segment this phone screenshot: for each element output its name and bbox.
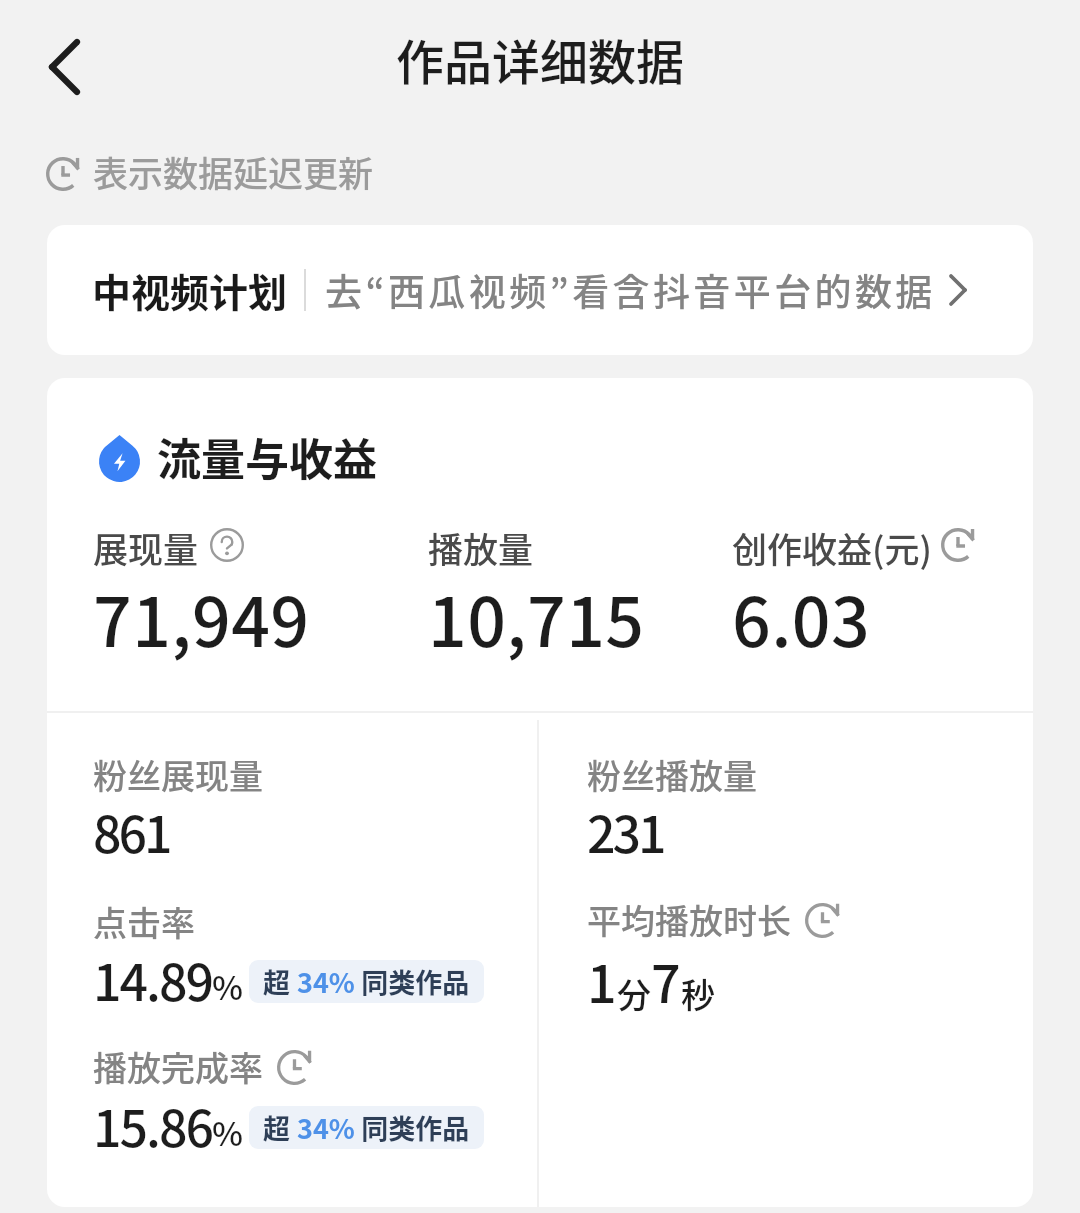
staticText: 粉丝展现量: [93, 750, 263, 799]
staticText: 播放完成率: [93, 1042, 263, 1091]
staticText: 71,949: [93, 568, 310, 666]
staticText: 中视频计划: [92, 262, 288, 318]
staticText: 同类作品: [355, 962, 470, 1001]
staticText: 7: [651, 943, 681, 1018]
staticText: 1: [587, 943, 617, 1018]
staticText: 去“西瓜视频”看含抖音平台的数据: [325, 263, 936, 317]
staticText: 15.86: [93, 1089, 212, 1161]
staticText: 平均播放时长: [587, 895, 791, 944]
staticText: 秒: [681, 969, 715, 1018]
staticText: 流量与收益: [157, 425, 377, 489]
staticText: 作品详细数据: [396, 24, 685, 94]
staticText: %: [212, 962, 243, 1010]
staticText: 表示数据延迟更新: [93, 146, 374, 197]
staticText: 同类作品: [355, 1108, 470, 1147]
staticText: %: [212, 1108, 243, 1156]
staticText: 34%: [297, 1108, 355, 1147]
button[interactable]: What is 展现量: [210, 528, 244, 562]
button[interactable]: Back: [29, 32, 99, 102]
staticText: 点击率: [93, 897, 195, 946]
staticText: 6.03: [732, 568, 871, 666]
staticText: 34%: [297, 962, 355, 1001]
staticText: 播放量: [428, 522, 534, 573]
staticText: 超: [263, 962, 297, 1001]
staticText: 创作收益(元): [732, 522, 932, 573]
staticText: 超: [263, 1108, 297, 1147]
staticText: 粉丝播放量: [587, 750, 757, 799]
staticText: 231: [587, 795, 664, 867]
staticText: 展现量: [93, 522, 199, 573]
staticText: 分: [617, 969, 651, 1018]
staticText: 861: [93, 795, 170, 867]
staticText: 10,715: [428, 568, 645, 666]
staticText: 14.89: [93, 943, 212, 1015]
button[interactable]: 中视频计划: [47, 225, 1033, 355]
